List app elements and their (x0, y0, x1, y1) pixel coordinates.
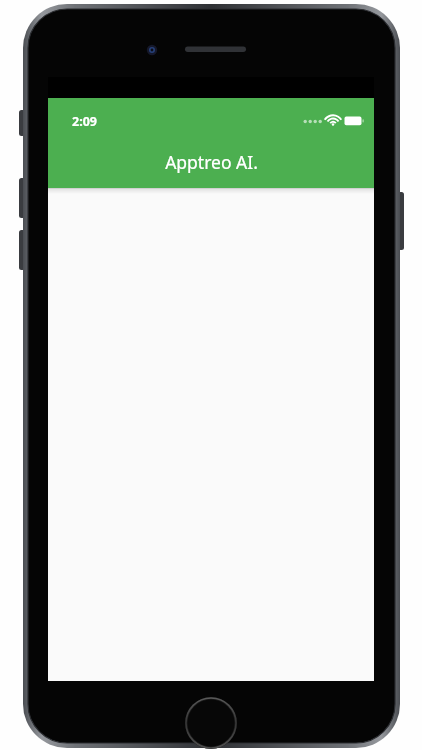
staticText: 2:09 (72, 113, 97, 130)
other: Signal, Wi-Fi and battery status (303, 112, 365, 130)
staticText: Apptreo AI. (165, 150, 258, 174)
button[interactable]: Apptreo AI. (165, 150, 258, 174)
